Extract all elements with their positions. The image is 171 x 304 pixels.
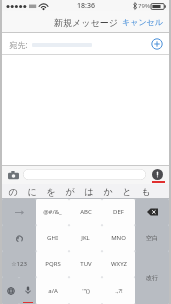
staticText: か (103, 186, 113, 197)
staticText: ABC (80, 208, 92, 216)
staticText: DEF (113, 208, 124, 216)
staticText: を (46, 186, 56, 197)
button[interactable]: a/A (36, 277, 69, 304)
staticText: の (8, 186, 18, 197)
staticText: .,?! (115, 287, 123, 295)
button[interactable]: も (136, 184, 155, 199)
staticText: も (141, 186, 151, 197)
button[interactable]: '"() (69, 277, 102, 304)
button[interactable]: JKL (69, 225, 102, 251)
staticText: に (27, 186, 37, 197)
button[interactable]: 改行 (135, 251, 169, 304)
staticText: は (84, 186, 94, 197)
button[interactable]: TUV (69, 251, 102, 277)
button[interactable]: と (117, 184, 136, 199)
button[interactable] (135, 199, 169, 225)
staticText: 18:36 (77, 1, 95, 11)
staticText: ☆123 (11, 260, 27, 268)
button[interactable]: MNO (102, 225, 135, 251)
staticText: 空白 (146, 234, 158, 242)
button[interactable]: Add contact (150, 37, 164, 51)
staticText: が (65, 186, 75, 197)
button[interactable]: か (98, 184, 117, 199)
button[interactable]: の (4, 184, 22, 199)
button[interactable]: ☆123 (2, 251, 36, 277)
staticText: 改行 (146, 274, 158, 282)
staticText: GHI (47, 234, 58, 242)
button[interactable]: 空白 (135, 225, 169, 251)
staticText: JKL (81, 234, 90, 242)
button[interactable]: ABC (69, 199, 102, 225)
button[interactable] (19, 277, 36, 304)
staticText: と (122, 186, 132, 197)
button[interactable] (23, 169, 146, 180)
button[interactable]: キャンセル (116, 13, 169, 31)
staticText: '"() (82, 287, 90, 295)
button[interactable]: @#/&_ (36, 199, 69, 225)
staticText: @#/&_ (43, 208, 62, 216)
staticText: WXYZ (111, 260, 127, 268)
button[interactable]: .,?! (102, 277, 135, 304)
button[interactable]: GHI (36, 225, 69, 251)
button[interactable]: Send (150, 167, 165, 182)
button[interactable]: Camera (6, 168, 20, 182)
button[interactable]: を (41, 184, 60, 199)
staticText: MNO (111, 234, 126, 242)
staticText: TUV (80, 260, 92, 268)
button[interactable]: WXYZ (102, 251, 135, 277)
button[interactable] (2, 199, 36, 225)
button[interactable]: に (22, 184, 41, 199)
button[interactable]: PQRS (36, 251, 69, 277)
staticText: a/A (48, 287, 58, 295)
button[interactable]: は (79, 184, 98, 199)
staticText: 79% (138, 2, 150, 10)
staticText: キャンセル (122, 17, 163, 27)
button[interactable]: が (60, 184, 79, 199)
staticText: 宛先: (9, 39, 28, 50)
staticText: 新規メッセージ (54, 17, 118, 28)
button[interactable] (2, 225, 36, 251)
button[interactable]: DEF (102, 199, 135, 225)
staticText: PQRS (45, 260, 61, 268)
button[interactable] (2, 277, 19, 304)
